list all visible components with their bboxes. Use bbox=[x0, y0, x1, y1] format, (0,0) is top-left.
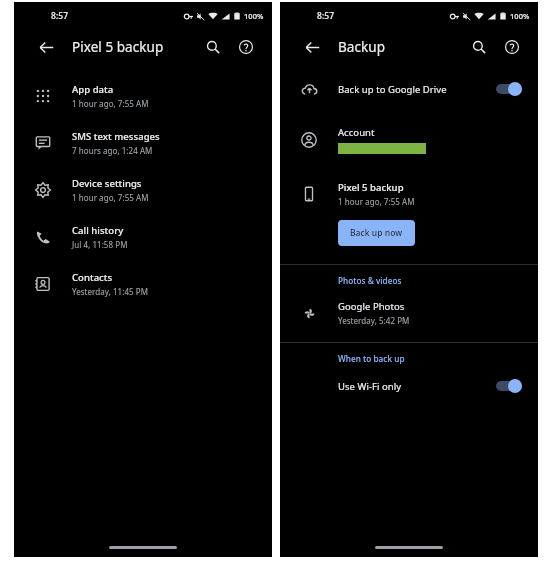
staticText: Back up to Google Drive bbox=[338, 83, 447, 96]
staticText: Yesterday, 5:42 PM bbox=[338, 315, 410, 326]
button[interactable]: Back bbox=[298, 33, 326, 61]
staticText: Back up now bbox=[350, 227, 403, 239]
button[interactable]: App data bbox=[14, 72, 272, 119]
staticText: 8:57 bbox=[51, 10, 69, 22]
staticText: Account bbox=[338, 126, 375, 139]
button[interactable]: Device settings bbox=[14, 166, 272, 213]
button[interactable]: SMS text messages bbox=[14, 119, 272, 166]
staticText: Yesterday, 11:45 PM bbox=[72, 286, 148, 297]
staticText: Jul 4, 11:58 PM bbox=[72, 239, 128, 250]
staticText: Pixel 5 backup bbox=[72, 38, 164, 56]
button[interactable]: Pixel 5 backup bbox=[280, 174, 538, 214]
button[interactable]: Use Wi-Fi only bbox=[280, 370, 538, 402]
staticText: 100% bbox=[244, 11, 264, 21]
staticText: Pixel 5 backup bbox=[338, 181, 404, 194]
button[interactable]: Toggle bbox=[496, 379, 522, 393]
staticText: Google Photos bbox=[338, 300, 405, 313]
button[interactable]: Google Photos bbox=[280, 294, 538, 332]
staticText: 8:57 bbox=[317, 10, 335, 22]
button[interactable]: Call history bbox=[14, 213, 272, 260]
staticText: Call history bbox=[72, 224, 124, 237]
staticText: Backup bbox=[338, 38, 385, 56]
staticText: Use Wi-Fi only bbox=[338, 380, 402, 393]
staticText: Device settings bbox=[72, 177, 142, 190]
staticText: Contacts bbox=[72, 271, 113, 284]
button[interactable]: Help bbox=[498, 33, 526, 61]
staticText: SMS text messages bbox=[72, 130, 160, 143]
staticText: 1 hour ago, 7:55 AM bbox=[72, 98, 149, 109]
button[interactable]: Search bbox=[199, 33, 227, 61]
button[interactable]: Toggle bbox=[496, 82, 522, 96]
button[interactable]: Contacts bbox=[14, 260, 272, 307]
staticText: 1 hour ago, 7:55 AM bbox=[338, 196, 415, 207]
button[interactable]: Help bbox=[232, 33, 260, 61]
button[interactable]: Search bbox=[465, 33, 493, 61]
button[interactable]: Back up to Google Drive bbox=[280, 70, 538, 108]
staticText: Photos & videos bbox=[338, 275, 402, 286]
button[interactable]: Account bbox=[280, 118, 538, 162]
staticText: 1 hour ago, 7:55 AM bbox=[72, 192, 149, 203]
staticText: 7 hours ago, 1:24 AM bbox=[72, 145, 153, 156]
staticText: App data bbox=[72, 83, 114, 96]
staticText: When to back up bbox=[338, 353, 405, 364]
button[interactable]: Back bbox=[32, 33, 60, 61]
button[interactable]: Back up now bbox=[338, 220, 415, 246]
staticText: 100% bbox=[510, 11, 530, 21]
